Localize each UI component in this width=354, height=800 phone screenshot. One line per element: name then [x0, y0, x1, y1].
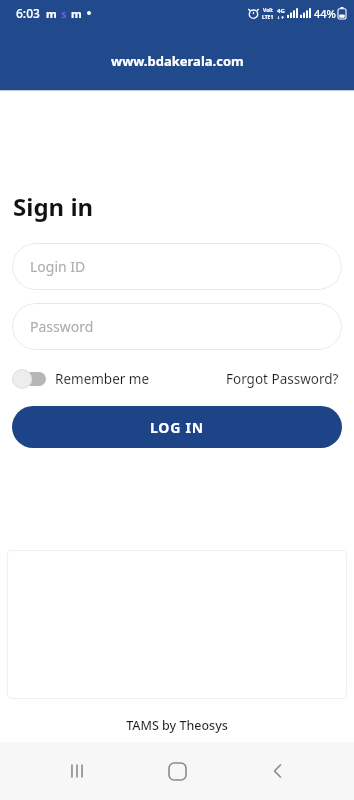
- staticText: TAMS by Theosys: [0, 717, 354, 734]
- staticText: m: [71, 6, 82, 21]
- staticText: Login ID: [30, 257, 86, 276]
- staticText: m: [46, 6, 57, 21]
- button[interactable]: Recent apps: [53, 747, 101, 795]
- staticText: www.bdakerala.com: [111, 52, 244, 70]
- button[interactable]: Home: [153, 747, 201, 795]
- staticText: s: [61, 6, 67, 21]
- staticText: Sign in: [13, 190, 94, 223]
- staticText: Remember me: [55, 370, 150, 388]
- staticText: LOG IN: [150, 418, 205, 437]
- button[interactable]: Remember me: [12, 365, 150, 393]
- staticText: Password: [30, 317, 94, 336]
- staticText: Volt: [263, 7, 273, 14]
- button[interactable]: Login ID: [12, 243, 342, 290]
- button[interactable]: LOG IN: [12, 406, 342, 448]
- button[interactable]: Password: [12, 303, 342, 350]
- staticText: 6:03: [16, 5, 40, 21]
- staticText: Forgot Password?: [226, 370, 339, 388]
- button[interactable]: Back: [254, 747, 302, 795]
- button[interactable]: Forgot Password?: [224, 366, 341, 392]
- staticText: 4G: [277, 7, 285, 15]
- staticText: ↓↑: [276, 15, 285, 19]
- staticText: 44%: [314, 6, 336, 21]
- staticText: LTE1: [262, 14, 274, 19]
